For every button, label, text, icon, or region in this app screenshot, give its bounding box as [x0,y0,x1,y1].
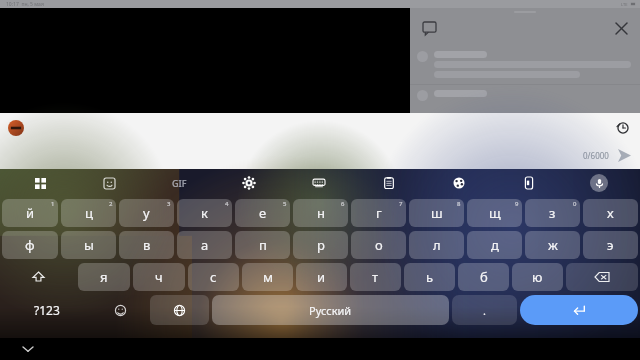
button[interactable]: в [119,231,174,259]
staticText: у [143,204,150,222]
button[interactable]: п [235,231,290,259]
staticText: к [201,204,208,222]
button[interactable]: э [583,231,638,259]
button[interactable]: с [188,263,239,291]
staticText: 2 [109,200,113,208]
staticText: 4 [225,200,229,208]
staticText: . [483,303,486,318]
staticText: н [317,204,325,222]
button[interactable]: з [525,199,580,227]
button[interactable]: м [242,263,293,291]
staticText: й [26,204,35,222]
button[interactable]: ?123 [2,295,91,325]
staticText: г [376,204,382,222]
button[interactable]: ш [409,199,464,227]
staticText: Русский [309,303,352,318]
button[interactable]: Close [610,17,632,39]
button[interactable]: Clipboard [354,169,424,197]
button[interactable]: я [78,263,130,291]
staticText: ?123 [34,302,60,318]
button[interactable]: Shift [2,263,75,291]
staticText: д [491,236,499,254]
button[interactable]: ж [525,231,580,259]
button[interactable]: Enter [520,295,638,325]
button[interactable]: ф [2,231,58,259]
staticText: я [100,268,108,286]
staticText: 6 [341,200,345,208]
button[interactable]: Change language [150,295,209,325]
staticText: о [375,236,383,254]
button[interactable]: у [119,199,174,227]
button[interactable]: Comments [418,17,440,39]
button[interactable]: Recent [614,119,632,137]
staticText: ш [431,204,443,222]
button[interactable]: й [2,199,58,227]
staticText: а [201,236,209,254]
button[interactable]: Emoji [94,295,147,325]
button[interactable]: г [351,199,406,227]
button[interactable]: щ [467,199,522,227]
button[interactable]: Hide keyboard [18,339,38,359]
button[interactable]: х [583,199,638,227]
button[interactable]: а [177,231,232,259]
staticText: LTE [621,2,628,7]
button[interactable]: Русский [212,295,449,325]
button[interactable]: One-hand mode [494,169,564,197]
staticText: ц [85,204,93,222]
button[interactable]: GIF [144,169,214,197]
staticText: 8 [457,200,461,208]
staticText: ж [548,236,558,254]
button[interactable]: к [177,199,232,227]
staticText: р [317,236,325,254]
button[interactable]: Keyboard mode [284,169,354,197]
button[interactable]: о [351,231,406,259]
staticText: ь [426,268,434,286]
button[interactable]: Apps [6,169,75,197]
staticText: с [210,268,217,286]
button[interactable] [417,90,631,101]
staticText: з [549,204,556,222]
button[interactable]: ч [133,263,185,291]
staticText: 1 [51,200,55,208]
staticText: п [259,236,267,254]
button[interactable]: ц [61,199,116,227]
staticText: е [259,204,267,222]
button[interactable]: д [467,231,522,259]
staticText: 9 [515,200,519,208]
button[interactable]: ю [512,263,563,291]
button[interactable]: Theme [424,169,494,197]
button[interactable]: т [350,263,401,291]
staticText: ы [84,236,94,254]
button[interactable]: Send [615,146,633,164]
button[interactable]: л [409,231,464,259]
staticText: 0 [573,200,577,208]
staticText: х [607,204,614,222]
button[interactable]: Voice input [590,174,608,192]
button[interactable]: Profile [0,113,640,169]
button[interactable]: и [296,263,347,291]
staticText: GIF [172,177,187,189]
button[interactable]: Backspace [566,263,638,291]
staticText: м [263,268,273,286]
button[interactable]: Stickers [75,169,144,197]
button[interactable]: . [452,295,517,325]
staticText: 7 [399,200,403,208]
staticText: 10:17 пн, 5 мая [6,1,44,8]
staticText: л [433,236,441,254]
staticText: щ [489,204,501,222]
button[interactable]: н [293,199,348,227]
button[interactable]: ь [404,263,455,291]
button[interactable]: р [293,231,348,259]
button[interactable] [417,51,631,78]
button[interactable]: ы [61,231,116,259]
button[interactable]: Profile [8,120,24,136]
button[interactable]: Settings [214,169,284,197]
button[interactable]: е [235,199,290,227]
staticText: т [372,268,379,286]
staticText: 3 [167,200,171,208]
button[interactable]: б [458,263,509,291]
staticText: и [317,268,326,286]
staticText: б [480,268,488,286]
staticText: ч [155,268,163,286]
staticText: в [143,236,151,254]
